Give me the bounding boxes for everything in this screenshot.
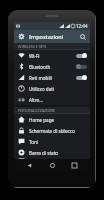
staticText: Barra di stato bbox=[29, 150, 59, 156]
button[interactable]: Home page bbox=[14, 114, 90, 125]
button[interactable]: Schermata di sblocco bbox=[14, 125, 90, 136]
button[interactable]: Reti mobili bbox=[14, 72, 90, 83]
button[interactable]: Bluetooth bbox=[14, 61, 90, 72]
button[interactable]: Recents bbox=[68, 159, 81, 172]
button[interactable]: Reti mobili toggle bbox=[76, 75, 87, 80]
button[interactable]: Back bbox=[23, 159, 36, 172]
staticText: 12:44 bbox=[76, 23, 88, 29]
button[interactable]: Wi-Fi bbox=[14, 50, 90, 61]
button[interactable]: Home bbox=[46, 159, 59, 172]
staticText: WIRELESS E RETI bbox=[18, 44, 47, 49]
button[interactable]: Altro... bbox=[14, 94, 90, 105]
staticText: Bluetooth bbox=[29, 64, 51, 70]
staticText: Utilizzo dati bbox=[29, 86, 55, 92]
staticText: Reti mobili bbox=[29, 75, 52, 81]
button[interactable]: Bluetooth toggle bbox=[76, 64, 87, 69]
button[interactable]: Utilizzo dati bbox=[14, 83, 90, 94]
button[interactable]: Wi-Fi toggle bbox=[76, 53, 87, 58]
button[interactable]: Menu notifiche bbox=[14, 158, 90, 159]
staticText: Impostazioni bbox=[29, 33, 64, 40]
staticText: PERSONALIZZAZIONE bbox=[18, 108, 56, 113]
staticText: Home page bbox=[29, 117, 55, 123]
button[interactable]: Barra di stato bbox=[14, 147, 90, 158]
staticText: Altro... bbox=[29, 97, 44, 103]
staticText: Wi-Fi bbox=[29, 53, 40, 59]
staticText: Schermata di sblocco bbox=[29, 128, 75, 134]
button[interactable]: Settings bbox=[17, 32, 26, 41]
button[interactable]: Toni bbox=[14, 136, 90, 147]
staticText: Toni bbox=[29, 139, 39, 145]
button[interactable]: Search bbox=[78, 32, 87, 41]
